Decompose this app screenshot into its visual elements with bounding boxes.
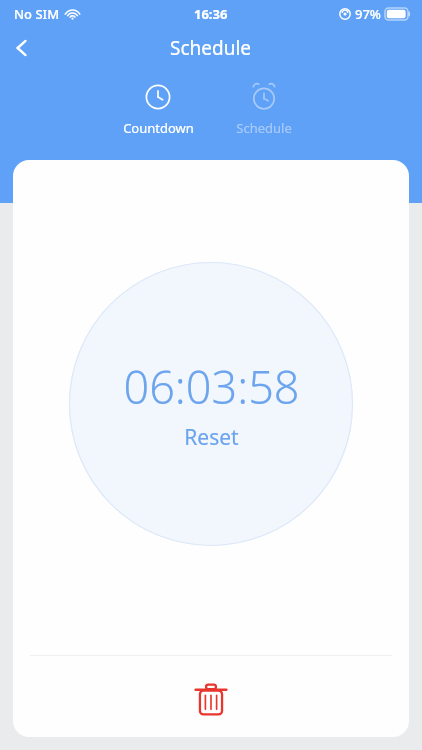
staticText: Schedule (170, 35, 252, 61)
staticText: Schedule (236, 119, 292, 137)
button[interactable]: Countdown (114, 82, 202, 139)
staticText: No SIM (14, 5, 60, 23)
staticText: Reset (184, 423, 239, 452)
staticText: 97% (355, 5, 381, 23)
button[interactable]: Schedule (220, 82, 308, 139)
staticText: 16:36 (194, 5, 228, 23)
button[interactable]: Delete (183, 672, 239, 728)
staticText: 06:03:58 (123, 356, 300, 417)
staticText: Countdown (123, 119, 194, 137)
button[interactable]: 06:03:58 (69, 262, 353, 546)
button[interactable]: Back (0, 28, 44, 68)
